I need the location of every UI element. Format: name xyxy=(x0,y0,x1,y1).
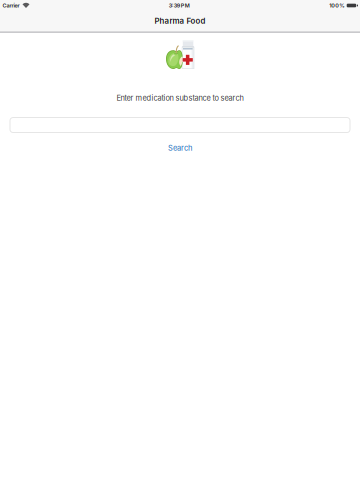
button[interactable]: Search xyxy=(168,143,192,152)
staticText: Enter medication substance to search xyxy=(116,93,243,102)
staticText: 3:39 PM xyxy=(169,2,190,9)
staticText: Search xyxy=(168,143,192,152)
staticText: 100% xyxy=(329,2,344,9)
staticText: Pharma Food xyxy=(154,16,205,26)
staticText: Carrier xyxy=(2,2,19,9)
